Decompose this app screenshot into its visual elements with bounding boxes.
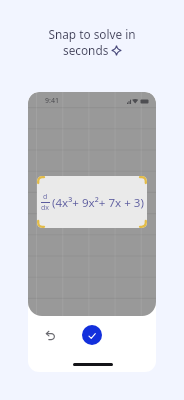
staticText: seconds [63,42,109,58]
button[interactable]: Confirm [82,325,102,345]
button[interactable]: Undo [42,327,58,343]
staticText: d [43,192,48,202]
staticText: 9:41 [45,96,59,106]
staticText: Snap to solve in [48,26,136,42]
staticText: dx [41,203,50,213]
staticText: (4x³+ 9x²+ 7x + 3) [52,195,144,211]
